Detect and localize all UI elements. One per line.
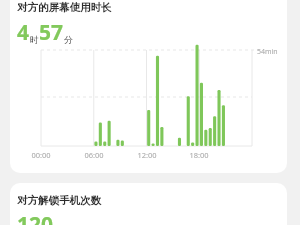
staticText: 06:00 [81,150,107,160]
staticText: 分 [64,34,73,45]
staticText: 对方解锁手机次数 [17,194,101,207]
staticText: 4 [17,18,30,47]
staticText: 18:00 [186,150,212,160]
staticText: 对方的屏幕使用时长 [17,1,112,14]
button[interactable]: 对方的屏幕使用时长 [10,0,287,173]
staticText: 120 [17,210,54,225]
button[interactable]: 对方解锁手机次数 [10,183,287,225]
staticText: 54min [257,47,278,57]
staticText: 00:00 [28,150,54,160]
staticText: 12:00 [134,150,160,160]
staticText: 时 [30,34,39,45]
staticText: 57 [39,18,64,47]
